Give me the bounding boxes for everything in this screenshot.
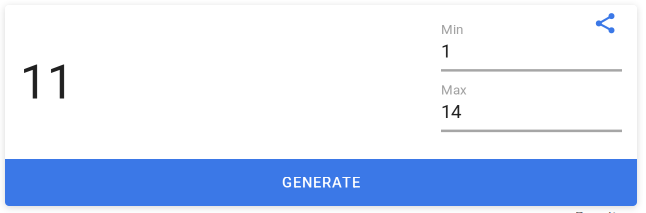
staticText: 1 bbox=[441, 40, 451, 62]
staticText: Results bbox=[575, 209, 625, 213]
button[interactable]: Share bbox=[587, 5, 623, 42]
staticText: Min bbox=[441, 22, 463, 37]
button[interactable]: GENERATE bbox=[5, 159, 637, 206]
staticText: GENERATE bbox=[282, 174, 360, 191]
button[interactable]: Min bbox=[441, 22, 622, 72]
staticText: 11 bbox=[20, 54, 74, 110]
staticText: Max bbox=[441, 82, 467, 98]
button[interactable]: Max bbox=[441, 82, 622, 132]
staticText: 14 bbox=[441, 101, 461, 123]
